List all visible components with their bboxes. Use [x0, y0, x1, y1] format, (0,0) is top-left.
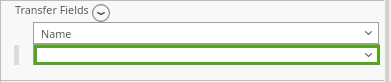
staticText: Transfer Fields [15, 2, 89, 17]
button[interactable]: Name [33, 22, 379, 44]
staticText: Name [41, 26, 72, 41]
button[interactable] [34, 45, 380, 65]
button[interactable]: Transfer Fields [12, 0, 113, 22]
other: Collapse Transfer Fields [92, 4, 110, 22]
